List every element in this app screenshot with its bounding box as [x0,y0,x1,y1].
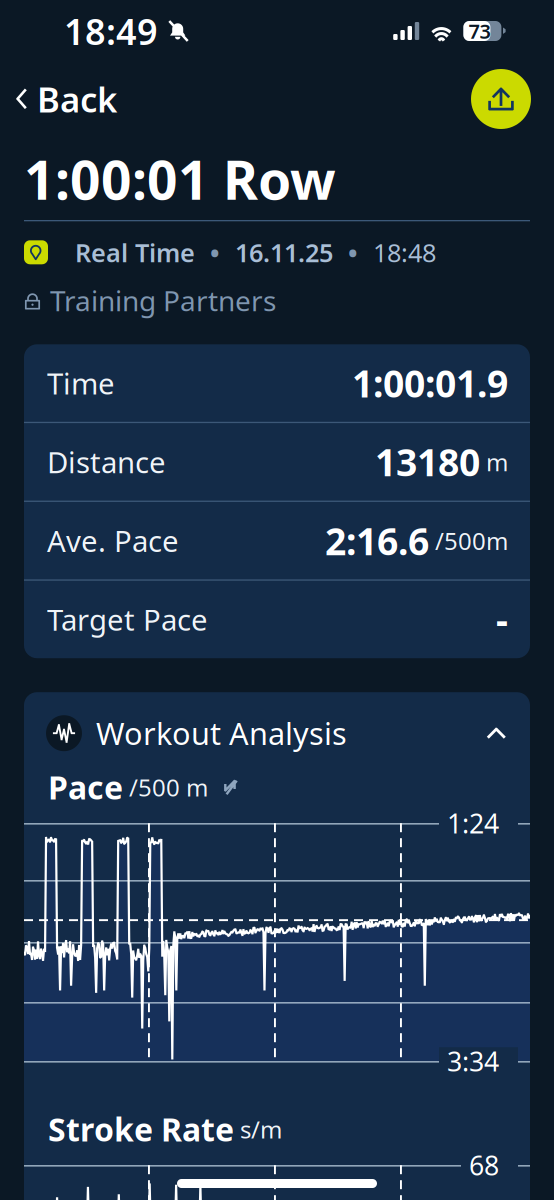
staticText: Time [47,364,115,403]
staticText: 2:16.6 [325,516,429,565]
staticText: Pace [48,766,123,808]
staticText: 13180 [375,437,480,487]
staticText: 16.11.25 [235,235,333,269]
staticText: 1:00:01.9 [352,358,508,408]
staticText: 1:24 [447,805,499,841]
staticText: 73 [468,18,490,44]
staticText: Stroke Rate [48,1108,234,1150]
staticText: Workout Analysis [96,713,347,753]
staticText: • [348,235,358,269]
button[interactable]: Training Partners [0,265,554,311]
button[interactable]: Back [0,66,117,132]
staticText: 18:48 [373,235,436,269]
staticText: Training Partners [50,282,276,319]
staticText: 1:00:01 Row [24,144,336,214]
button[interactable]: Workout Analysis [24,692,530,774]
staticText: Back [37,76,117,122]
staticText: m [480,446,508,478]
staticText: Ave. Pace [47,521,179,560]
staticText: - [496,595,508,644]
staticText: 18:49 [64,7,158,55]
staticText: • [210,235,220,269]
staticText: 3:34 [447,1043,499,1079]
staticText: /500m [429,525,508,557]
staticText: Real Time [75,235,195,269]
staticText: 68 [469,1147,499,1183]
staticText: /500 m [123,771,208,803]
staticText: Target Pace [47,600,208,639]
staticText: Distance [47,442,166,481]
button[interactable]: Share [471,69,531,129]
staticText: s/m [234,1113,282,1145]
